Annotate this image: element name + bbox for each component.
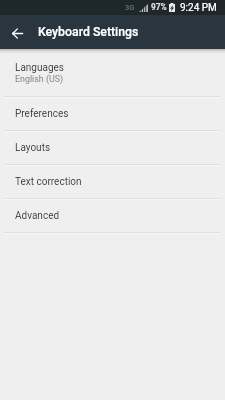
staticText: 97%	[151, 2, 167, 12]
button[interactable]: Advanced	[0, 200, 225, 232]
staticText: Keyboard Settings	[38, 25, 139, 39]
staticText: Layouts	[15, 142, 51, 154]
button[interactable]: Text correction	[0, 166, 225, 198]
staticText: English (US)	[15, 74, 64, 84]
button[interactable]: Navigate back	[0, 15, 34, 49]
staticText: 9:24 PM	[180, 2, 217, 14]
staticText: Languages	[15, 62, 64, 74]
staticText: Preferences	[15, 108, 69, 120]
button[interactable]: Languages	[0, 49, 225, 96]
button[interactable]: Layouts	[0, 132, 225, 164]
staticText: Text correction	[15, 176, 82, 188]
button[interactable]: Preferences	[0, 98, 225, 130]
staticText: 3G	[125, 3, 135, 12]
staticText: Advanced	[15, 210, 60, 222]
